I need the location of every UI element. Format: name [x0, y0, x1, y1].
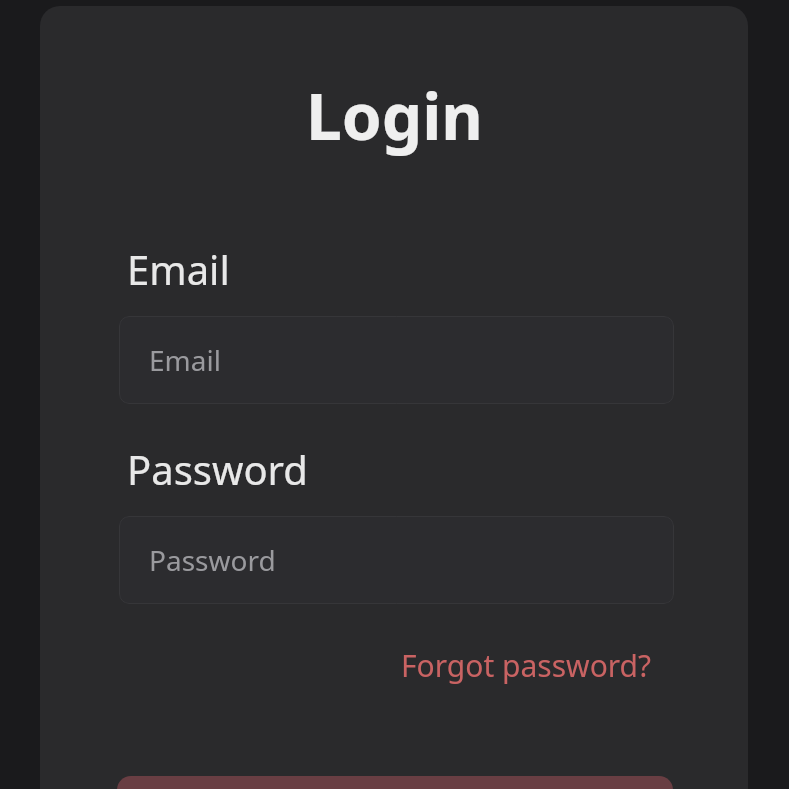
- staticText: Login: [306, 72, 483, 159]
- button[interactable]: Forgot password?: [401, 645, 652, 686]
- staticText: Password: [149, 541, 276, 579]
- staticText: Email: [127, 242, 230, 296]
- button[interactable]: [117, 776, 673, 789]
- staticText: Email: [149, 341, 221, 379]
- staticText: Password: [127, 442, 308, 496]
- button[interactable]: Password: [119, 516, 674, 604]
- button[interactable]: Email: [119, 316, 674, 404]
